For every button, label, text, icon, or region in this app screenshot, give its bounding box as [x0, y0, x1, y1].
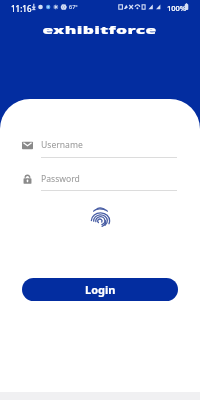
staticText: exhibitforce [43, 23, 157, 37]
button[interactable]: Login with fingerprint [87, 205, 113, 231]
staticText: 100% [167, 3, 187, 13]
staticText: Password [41, 173, 80, 185]
staticText: Login [85, 282, 116, 297]
button[interactable]: Login [22, 278, 178, 301]
staticText: Username [41, 139, 83, 151]
staticText: 11:16 [11, 3, 32, 14]
staticText: 67° [69, 3, 78, 10]
